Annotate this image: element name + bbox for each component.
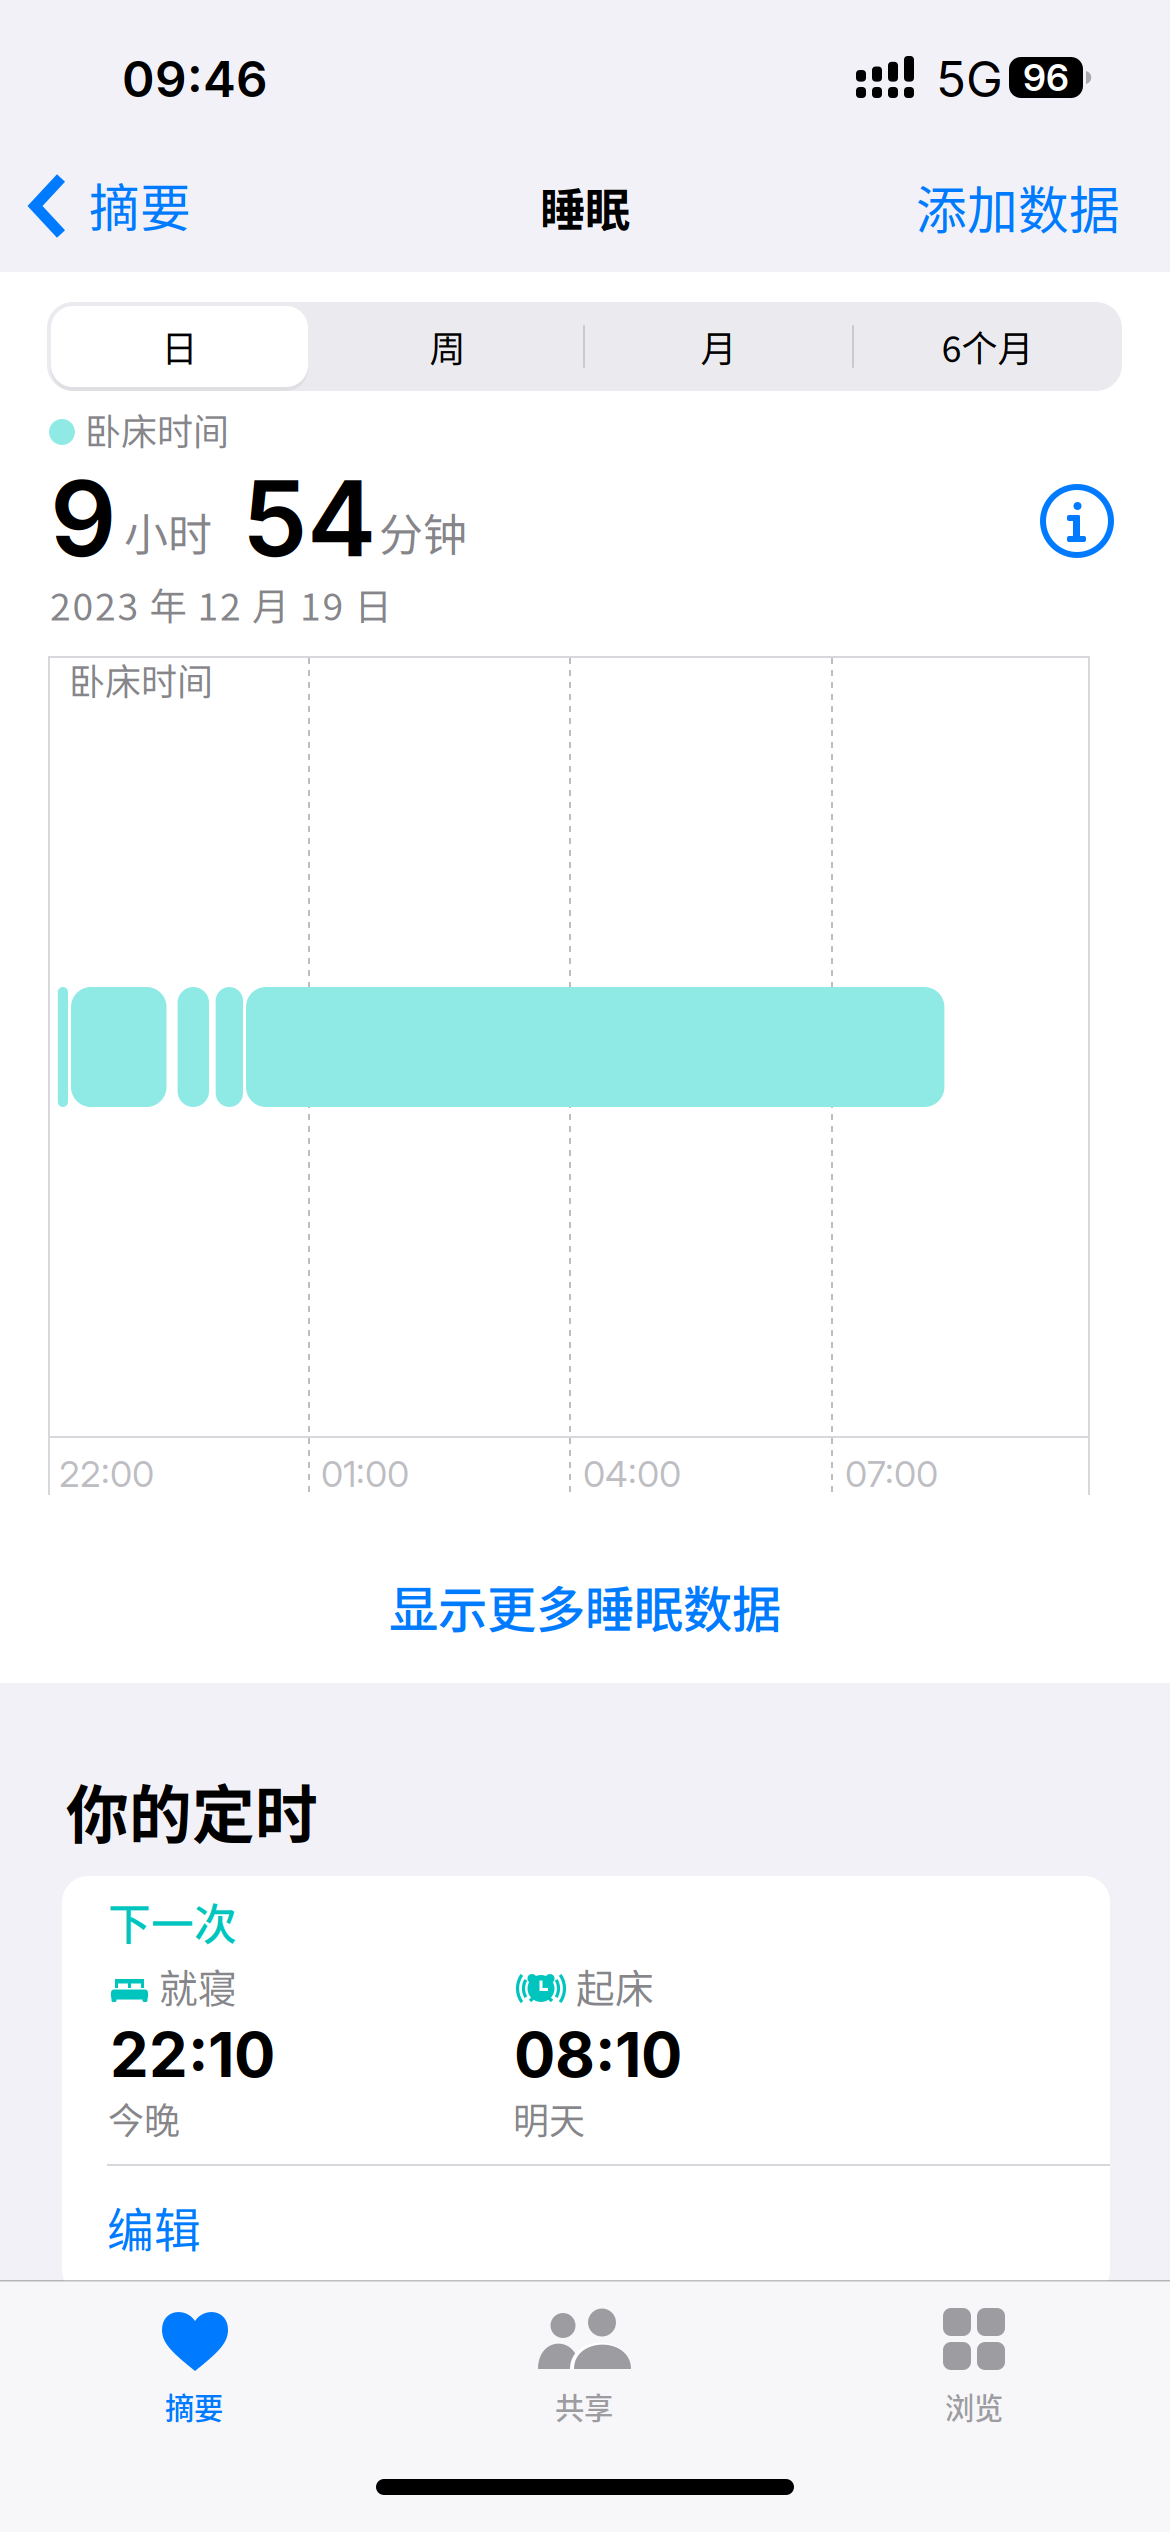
staticText: 分钟 — [379, 500, 467, 564]
staticText: 卧床时间 — [85, 404, 229, 456]
button[interactable]: 周 — [315, 302, 580, 391]
staticText: 01:00 — [321, 1452, 409, 1496]
button[interactable]: 月 — [586, 302, 851, 391]
staticText: 小时 — [124, 500, 212, 564]
staticText: 下一次 — [108, 1891, 237, 1952]
staticText: 摘要 — [89, 168, 191, 241]
staticText: 添加数据 — [916, 170, 1120, 244]
button[interactable]: 浏览 — [780, 2281, 1170, 2429]
staticText: 就寝 — [159, 1958, 237, 2014]
staticText: 22:00 — [59, 1452, 154, 1496]
staticText: 睡眠 — [540, 174, 630, 240]
staticText: 明天 — [513, 2093, 585, 2145]
button[interactable]: 日 — [51, 306, 308, 387]
staticText: 你的定时 — [66, 1765, 318, 1856]
button[interactable]: 6个月 — [855, 302, 1120, 391]
staticText: 9 — [50, 455, 117, 581]
staticText: 04:00 — [583, 1452, 681, 1496]
staticText: 起床 — [576, 1958, 654, 2014]
staticText: 浏览 — [945, 2385, 1003, 2427]
button[interactable]: 共享 — [390, 2281, 780, 2429]
button[interactable]: 摘要 — [17, 155, 227, 259]
staticText: 摘要 — [165, 2385, 223, 2427]
staticText: 08:10 — [514, 2018, 682, 2092]
staticText: 日 — [161, 320, 197, 372]
button[interactable]: 编辑 — [107, 2181, 1110, 2291]
staticText: 96 — [1023, 55, 1069, 100]
staticText: 22:10 — [110, 2018, 275, 2092]
staticText: 显示更多睡眠数据 — [389, 1570, 781, 1642]
staticText: 今晚 — [108, 2093, 180, 2145]
button[interactable]: 关于卧床时间 — [1040, 484, 1114, 558]
button[interactable]: 摘要 — [0, 2281, 390, 2429]
staticText: 6个月 — [941, 320, 1033, 372]
staticText: 54 — [242, 455, 376, 581]
staticText: 09:46 — [122, 49, 268, 109]
button[interactable]: 显示更多睡眠数据 — [0, 1541, 1170, 1671]
staticText: 共享 — [555, 2385, 613, 2427]
staticText: 周 — [429, 320, 465, 372]
staticText: 卧床时间 — [69, 654, 213, 706]
staticText: 07:00 — [845, 1452, 938, 1496]
button[interactable]: 添加数据 — [820, 161, 1120, 253]
staticText: 月 — [700, 320, 736, 372]
staticText: 2023 年 12 月 19 日 — [50, 577, 391, 631]
staticText: 5G — [936, 49, 1003, 109]
staticText: 编辑 — [107, 2193, 201, 2261]
